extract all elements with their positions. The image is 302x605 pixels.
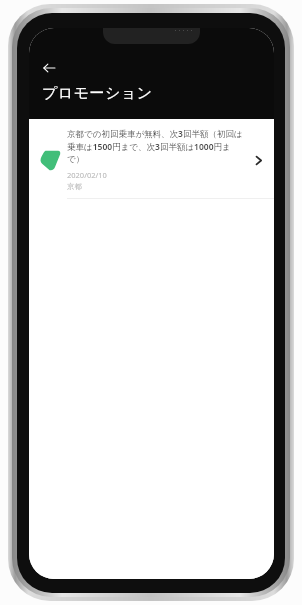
staticText: 京都 — [67, 182, 82, 191]
staticText: 2020/02/10 — [67, 170, 107, 180]
staticText: プロモーション — [42, 84, 153, 103]
staticText: 京都での初回乗車が無料、次3回半額（初回は乗車は1500円まで、次3回半額は10… — [67, 128, 244, 165]
button[interactable]: Back — [34, 53, 64, 83]
button[interactable]: 京都での初回乗車が無料、次3回半額（初回は乗車は1500円まで、次3回半額は10… — [29, 119, 274, 199]
